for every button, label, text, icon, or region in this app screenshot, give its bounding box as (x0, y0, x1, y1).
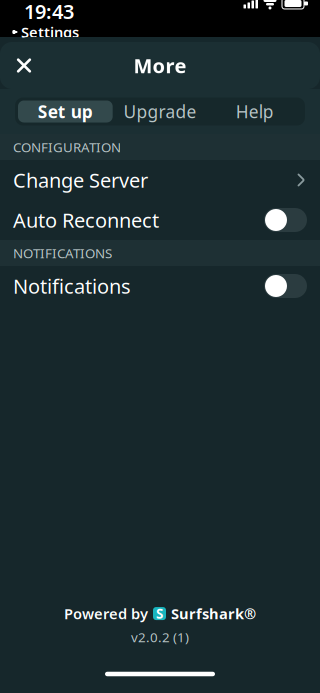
button[interactable]: Auto Reconnect (0, 200, 320, 240)
staticText: Settings (21, 22, 79, 42)
button[interactable]: Set up (18, 100, 113, 122)
button[interactable]: Close (2, 43, 46, 87)
staticText: v2.0.2 (1) (131, 628, 189, 646)
staticText: Change Server (13, 167, 148, 193)
button[interactable]: Upgrade (113, 100, 207, 122)
staticText: Set up (38, 100, 93, 123)
button[interactable]: Help (207, 100, 302, 122)
staticText: Powered by (64, 604, 148, 623)
staticText: NOTIFICATIONS (13, 244, 112, 262)
staticText: S (156, 605, 163, 622)
staticText: Upgrade (123, 100, 196, 123)
button[interactable]: Change Server (0, 160, 320, 200)
staticText: Notifications (13, 273, 131, 299)
staticText: Surfshark® (171, 604, 256, 623)
staticText: More (133, 52, 186, 79)
staticText: Auto Reconnect (13, 207, 159, 233)
staticText: 19:43 (24, 0, 74, 25)
button[interactable]: Notifications (0, 266, 320, 306)
staticText: Help (236, 100, 274, 123)
staticText: CONFIGURATION (13, 138, 121, 156)
